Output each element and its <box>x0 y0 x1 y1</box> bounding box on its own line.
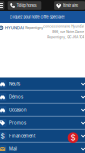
button[interactable]: Menu <box>0 1 4 10</box>
staticText: Itinéraire <box>63 3 78 8</box>
staticText: Repentigny <box>25 26 43 30</box>
button[interactable]: Téléphones <box>8 1 41 10</box>
button[interactable]: $ <box>0 129 85 142</box>
staticText: $ <box>0 132 4 140</box>
staticText: Mail <box>9 146 17 152</box>
button[interactable]: Itinéraire <box>54 1 85 10</box>
button[interactable]: Occasion <box>0 103 85 116</box>
staticText: Promos <box>9 120 26 126</box>
staticText: Occasion <box>9 107 27 113</box>
button[interactable]: Neufs <box>0 77 85 90</box>
staticText: Cliquez pour notre Offre Spéciale! <box>9 15 64 19</box>
button[interactable]: Mail <box>0 142 85 153</box>
staticText: Démos <box>9 94 23 100</box>
staticText: Financement <box>9 133 35 139</box>
staticText: Neufs <box>9 81 20 87</box>
staticText: Repentigny, QC J6A 1C4 <box>47 35 84 39</box>
staticText: Téléphones <box>16 3 36 8</box>
staticText: concessionnaire Hyundai <box>43 25 84 28</box>
staticText: HYUNDAI <box>5 25 24 30</box>
staticText: 866, rue Notre-Dame <box>52 30 84 34</box>
button[interactable]: Promos <box>0 116 85 129</box>
staticText: H <box>0 26 3 30</box>
staticText: $ <box>70 133 75 143</box>
button[interactable]: Offres spéciales <box>68 132 78 143</box>
button[interactable]: Cliquez pour notre Offre Spéciale! <box>0 11 85 23</box>
button[interactable]: Démos <box>0 90 85 103</box>
